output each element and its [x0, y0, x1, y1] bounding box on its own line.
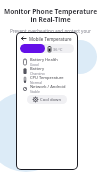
- button[interactable]: Cool down: [27, 95, 67, 104]
- staticText: Battery: [30, 66, 45, 71]
- staticText: Charging: [30, 71, 45, 75]
- button[interactable]: Battery: [23, 66, 71, 75]
- button[interactable]: 36 °C: [20, 44, 74, 53]
- staticText: Network / Android: [30, 84, 66, 89]
- button[interactable]: CPU Temperature: [23, 75, 71, 84]
- staticText: Cool down: [40, 97, 62, 103]
- staticText: Monitor Phone Temperature in Real-Time: [3, 7, 98, 24]
- staticText: Normal: [30, 80, 42, 84]
- staticText: Good: [30, 62, 39, 66]
- staticText: Stable: [30, 89, 40, 93]
- button[interactable]: Battery Health: [23, 57, 71, 66]
- button[interactable]: Network / Android: [23, 84, 71, 93]
- staticText: Prevent overheating and protect your dev…: [3, 28, 98, 40]
- button[interactable]: Back: [20, 35, 27, 42]
- staticText: Mobile Temperature Checker: [29, 36, 74, 42]
- staticText: CPU Temperature: [30, 75, 64, 80]
- staticText: 36 °C: [53, 47, 63, 52]
- staticText: Battery Health: [30, 57, 58, 62]
